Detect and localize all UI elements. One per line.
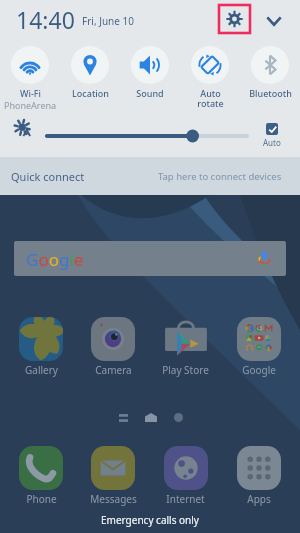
button[interactable]: Wi-Fi [0, 38, 60, 114]
staticText: Emergency calls only [0, 513, 300, 527]
staticText: Fri, June 10 [82, 14, 134, 28]
staticText: Camera [95, 363, 132, 377]
staticText: Auto [263, 137, 281, 148]
staticText: Bluetooth [249, 87, 292, 99]
button[interactable]: Internet [149, 446, 222, 506]
button[interactable]: Google [222, 317, 295, 377]
button[interactable]: Home page [143, 411, 159, 424]
button[interactable]: Auto [258, 123, 286, 151]
button[interactable]: Bluetooth [240, 38, 300, 114]
staticText: Gallery [25, 363, 58, 377]
staticText: Google [242, 363, 276, 377]
button[interactable]: Settings [219, 5, 250, 33]
staticText: Messages [90, 492, 137, 506]
button[interactable]: Apps [222, 446, 295, 506]
staticText: Quick connect [11, 169, 85, 184]
staticText: Internet [166, 492, 205, 506]
staticText: Sound [136, 87, 164, 99]
staticText: Location [72, 87, 109, 99]
button[interactable]: Quick connect [0, 157, 300, 195]
button[interactable]: Page 2 [172, 411, 185, 424]
button[interactable]: Gallery [5, 317, 77, 377]
staticText: Apps [247, 492, 271, 506]
staticText: Google [26, 248, 84, 271]
button[interactable]: Collapse panel [262, 9, 285, 32]
staticText: Play Store [162, 363, 209, 377]
button[interactable]: Voice search [256, 250, 273, 267]
button[interactable]: Camera [77, 317, 149, 377]
staticText: 14:40 [16, 4, 75, 35]
button[interactable]: Location [60, 38, 120, 114]
staticText: Wi-Fi [20, 87, 41, 99]
button[interactable]: Google [14, 241, 286, 276]
staticText: Tap here to connect devices [158, 170, 282, 183]
button[interactable]: Phone [5, 446, 77, 506]
button[interactable]: Edit home screen [116, 411, 130, 424]
button[interactable]: Messages [77, 446, 149, 506]
staticText: Auto rotate [197, 87, 224, 109]
button[interactable]: Play Store [149, 317, 222, 377]
button[interactable]: Sound [120, 38, 180, 114]
staticText: Phone [26, 492, 57, 506]
button[interactable]: Auto rotate [180, 38, 240, 114]
staticText: PhoneArena [4, 99, 57, 111]
